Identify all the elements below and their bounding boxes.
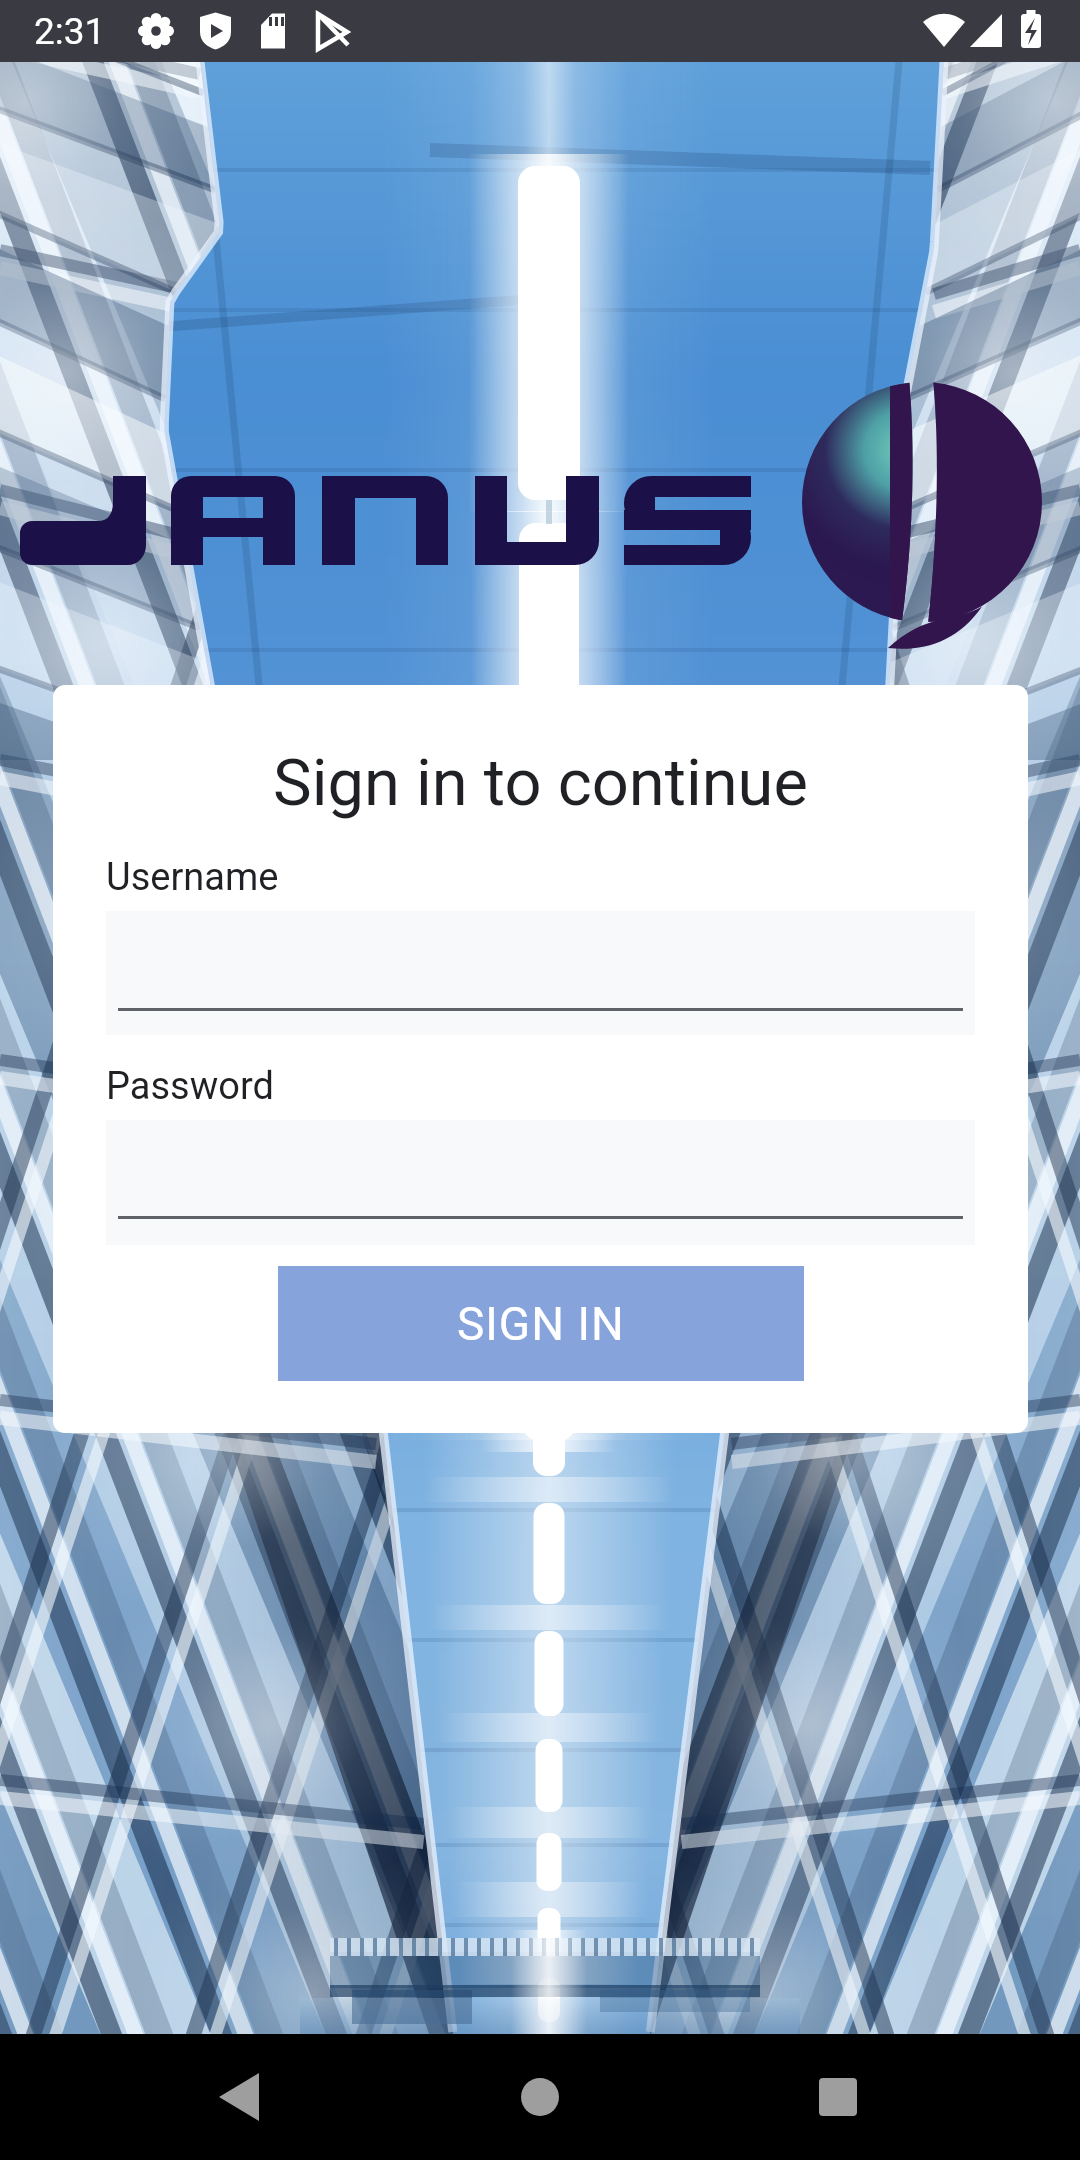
staticText: 2:31 <box>34 10 106 53</box>
staticText: Sign in to continue <box>53 745 1028 821</box>
button[interactable]: Password input field <box>106 1120 975 1245</box>
button[interactable]: Username input field <box>106 911 975 1035</box>
button[interactable]: SIGN IN <box>278 1266 804 1381</box>
button[interactable]: Recent apps <box>748 2034 928 2160</box>
button[interactable]: Home <box>450 2034 630 2160</box>
staticText: Password <box>106 1064 274 1109</box>
staticText: SIGN IN <box>457 1297 625 1351</box>
button[interactable]: Back <box>180 2034 360 2160</box>
staticText: Username <box>106 855 279 900</box>
